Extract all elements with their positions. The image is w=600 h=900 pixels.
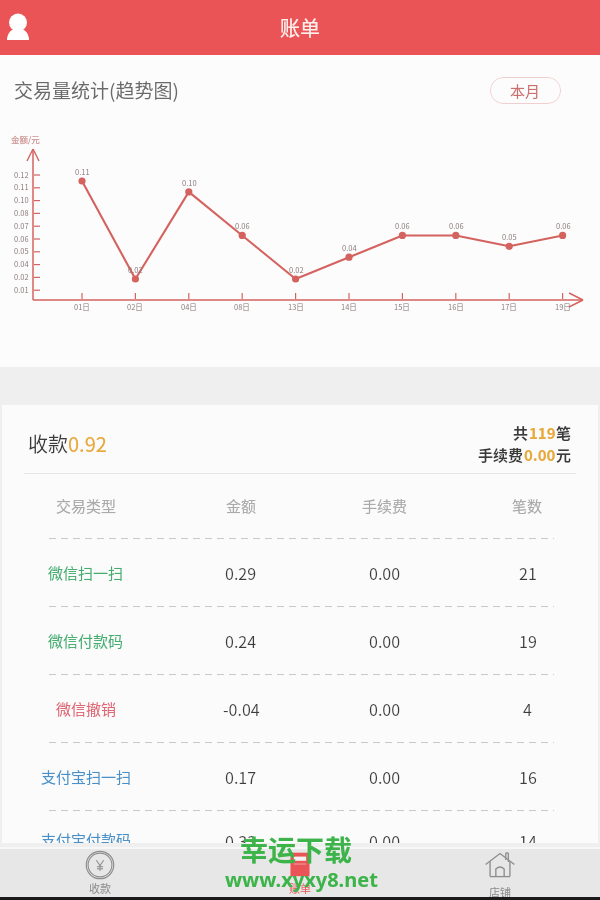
staticText: 支付宝扫一扫 (41, 766, 132, 788)
staticText: 0.04 (342, 242, 357, 253)
staticText: 0.02 (289, 264, 304, 275)
staticText: 17日 (501, 301, 517, 312)
staticText: 本月 (510, 80, 541, 102)
button[interactable]: 支付宝扫一扫 (2, 743, 598, 810)
staticText: 共 (513, 422, 529, 444)
staticText: 0.04 (14, 258, 29, 269)
staticText: 0.06 (395, 220, 410, 231)
staticText: 04日 (181, 301, 197, 312)
button[interactable]: 微信付款码 (2, 607, 598, 674)
staticText: 0.24 (225, 629, 257, 652)
staticText: 0.10 (182, 177, 197, 188)
staticText: 01日 (74, 301, 90, 312)
staticText: 0.00 (369, 561, 401, 584)
staticText: 0.06 (235, 220, 250, 231)
staticText: 0.05 (502, 231, 517, 242)
staticText: 4 (523, 697, 532, 720)
staticText: 账单 (280, 13, 320, 42)
staticText: 02日 (127, 301, 143, 312)
staticText: 0.06 (556, 220, 571, 231)
staticText: 0.06 (14, 233, 29, 244)
staticText: 笔数 (512, 495, 543, 517)
staticText: 0.33 (225, 829, 257, 852)
staticText: 0.01 (14, 284, 29, 295)
staticText: 交易类型 (56, 495, 117, 517)
staticText: 元 (556, 444, 572, 466)
staticText: 0.12 (14, 169, 29, 180)
staticText: 16 (519, 765, 537, 788)
staticText: 手续费 (478, 444, 524, 466)
button[interactable]: 收款 (0, 849, 200, 897)
staticText: 0.29 (225, 561, 257, 584)
button[interactable]: 交易类型 (2, 474, 598, 538)
staticText: 0.17 (225, 765, 257, 788)
staticText: 13日 (288, 301, 304, 312)
staticText: 0.00 (369, 829, 401, 852)
staticText: www.xyxy8.net (225, 866, 378, 893)
staticText: 119 (529, 422, 556, 444)
staticText: 14日 (341, 301, 357, 312)
staticText: 收款 (28, 429, 68, 458)
staticText: 0.11 (14, 181, 29, 192)
staticText: 0.10 (14, 194, 29, 205)
staticText: 14 (519, 829, 537, 852)
staticText: 金额/元 (11, 133, 40, 145)
button[interactable]: 店铺 (400, 849, 600, 897)
staticText: 收款 (89, 880, 111, 896)
staticText: 0.07 (14, 220, 29, 231)
staticText: 0.05 (14, 245, 29, 256)
staticText: 19日 (555, 301, 571, 312)
staticText: -0.04 (223, 697, 260, 720)
staticText: 0.02 (128, 264, 143, 275)
staticText: 0.11 (75, 166, 90, 177)
button[interactable]: 本月 (490, 77, 561, 104)
staticText: 0.00 (369, 765, 401, 788)
button[interactable]: 微信扫一扫 (2, 539, 598, 606)
staticText: 0.00 (524, 444, 556, 466)
staticText: 微信付款码 (48, 630, 124, 652)
staticText: 账单 (289, 880, 311, 896)
staticText: 0.00 (369, 629, 401, 652)
staticText: 08日 (234, 301, 250, 312)
staticText: 0.00 (369, 697, 401, 720)
button[interactable]: Account (0, 0, 46, 55)
button[interactable]: 支付宝付款码 (2, 811, 598, 843)
staticText: 0.92 (68, 429, 107, 458)
staticText: 金额 (226, 495, 257, 517)
staticText: 15日 (394, 301, 410, 312)
staticText: 支付宝付款码 (41, 829, 132, 851)
staticText: 笔 (556, 422, 572, 444)
staticText: 21 (519, 561, 537, 584)
staticText: 16日 (448, 301, 464, 312)
staticText: 幸运下载 (240, 829, 353, 870)
staticText: 微信撤销 (56, 698, 117, 720)
staticText: 微信扫一扫 (48, 562, 124, 584)
staticText: 0.02 (14, 271, 29, 282)
staticText: 店铺 (489, 884, 511, 897)
button[interactable]: 账单 (200, 849, 400, 897)
staticText: 19 (519, 629, 537, 652)
button[interactable]: 微信撤销 (2, 675, 598, 742)
staticText: 0.08 (14, 207, 29, 218)
staticText: 0.06 (449, 220, 464, 231)
staticText: 交易量统计(趋势图) (14, 76, 179, 104)
staticText: 手续费 (362, 495, 408, 517)
